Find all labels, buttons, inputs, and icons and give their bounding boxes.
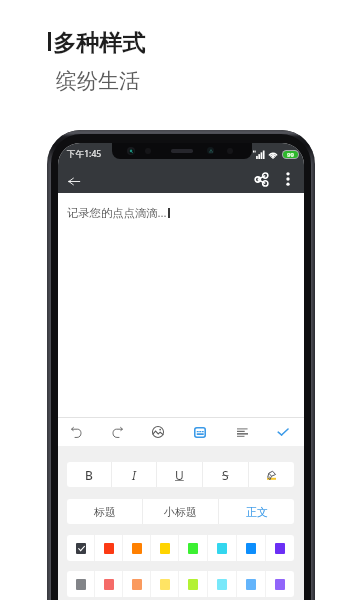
staticText: 99 bbox=[287, 151, 294, 158]
staticText: 缤纷生活 bbox=[56, 68, 140, 94]
staticText: S bbox=[222, 467, 229, 483]
button[interactable]: 小标题 bbox=[143, 499, 218, 524]
staticText: 正文 bbox=[246, 505, 268, 519]
button[interactable]: I bbox=[112, 462, 156, 487]
button[interactable]: Colour bbox=[266, 535, 294, 561]
button[interactable]: Colour bbox=[123, 571, 150, 597]
staticText: 多种样式 bbox=[53, 29, 145, 58]
staticText: 下午1:45 bbox=[67, 148, 102, 160]
staticText: I bbox=[132, 467, 136, 483]
staticText: B bbox=[85, 467, 93, 483]
button[interactable]: Colour bbox=[151, 571, 178, 597]
button[interactable]: Colour bbox=[179, 535, 207, 561]
button[interactable]: B bbox=[67, 462, 111, 487]
button[interactable]: Text format bbox=[186, 418, 214, 446]
button[interactable]: Colour bbox=[208, 571, 236, 597]
button[interactable]: Colour bbox=[237, 571, 265, 597]
button[interactable]: Colour bbox=[95, 535, 122, 561]
button[interactable]: U bbox=[157, 462, 202, 487]
button[interactable]: Insert image bbox=[144, 418, 172, 446]
button[interactable]: Back bbox=[61, 168, 87, 194]
button[interactable]: Colour bbox=[237, 535, 265, 561]
button[interactable]: Redo bbox=[103, 418, 131, 446]
button[interactable]: Colour bbox=[67, 571, 94, 597]
staticText: 小标题 bbox=[164, 505, 197, 519]
button[interactable]: More options bbox=[276, 167, 300, 191]
button[interactable]: Colour bbox=[179, 571, 207, 597]
button[interactable]: Colour bbox=[123, 535, 150, 561]
button[interactable]: Alignment bbox=[228, 418, 256, 446]
staticText: U bbox=[175, 467, 184, 483]
button[interactable]: 正文 bbox=[219, 499, 294, 524]
button[interactable] bbox=[249, 462, 294, 487]
button[interactable]: S bbox=[203, 462, 248, 487]
button[interactable]: Colour bbox=[67, 535, 94, 561]
button[interactable]: Colour bbox=[95, 571, 122, 597]
button[interactable]: Colour bbox=[266, 571, 294, 597]
button[interactable]: Colour bbox=[151, 535, 178, 561]
button[interactable]: Share bbox=[249, 167, 273, 191]
staticText: 记录您的点点滴滴... bbox=[67, 205, 167, 220]
button[interactable]: 标题 bbox=[67, 499, 142, 524]
button[interactable]: Undo bbox=[62, 418, 90, 446]
staticText: 标题 bbox=[94, 505, 116, 519]
button[interactable]: Done bbox=[269, 418, 297, 446]
button[interactable]: Colour bbox=[208, 535, 236, 561]
